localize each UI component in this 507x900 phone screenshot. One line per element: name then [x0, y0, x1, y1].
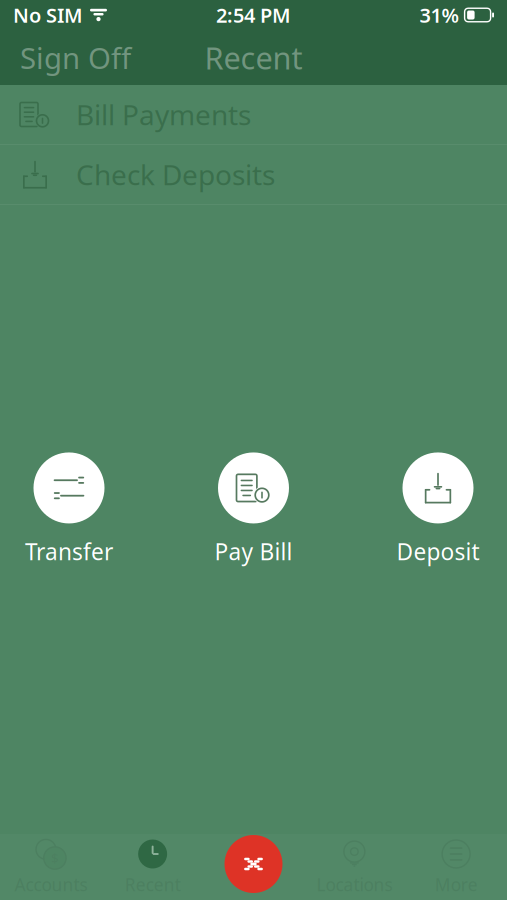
button[interactable]: Close	[224, 835, 282, 893]
staticText: 31%	[420, 2, 460, 28]
button[interactable]: Check Deposits	[0, 145, 507, 204]
staticText: Check Deposits	[76, 156, 275, 193]
button[interactable]: Bill Payments	[0, 85, 507, 144]
staticText: Transfer	[25, 536, 113, 566]
staticText: Sign Off	[20, 38, 131, 77]
button[interactable]: Deposit	[373, 452, 503, 566]
staticText: Deposit	[396, 536, 479, 566]
button[interactable]: Transfer	[4, 452, 134, 566]
staticText: Pay Bill	[214, 536, 292, 566]
button[interactable]: Recent	[102, 836, 204, 898]
staticText: No SIM	[13, 2, 83, 28]
staticText: Bill Payments	[76, 96, 251, 133]
button[interactable]: Sign Off	[0, 29, 151, 86]
staticText: 2:54 PM	[216, 2, 291, 28]
button[interactable]: Pay Bill	[188, 452, 318, 566]
staticText: Recent	[204, 37, 302, 78]
